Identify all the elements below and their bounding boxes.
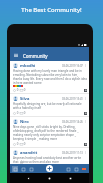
button[interactable]: Niro bbox=[10, 117, 89, 147]
staticText: 0 bbox=[16, 88, 20, 92]
button[interactable]: Menu bbox=[14, 53, 18, 57]
staticText: 0 bbox=[23, 142, 26, 146]
button[interactable]: Like bbox=[13, 89, 16, 92]
button[interactable]: More options bbox=[84, 97, 87, 100]
button[interactable]: Comment bbox=[20, 143, 23, 146]
staticText: Having done with my lovely man triangle … bbox=[13, 69, 87, 85]
staticText: 0 bbox=[16, 142, 20, 146]
staticText: Community bbox=[23, 53, 48, 59]
button[interactable]: anandrit bbox=[10, 148, 89, 164]
staticText: mbodhi bbox=[20, 63, 36, 68]
button[interactable]: Back bbox=[26, 176, 31, 181]
staticText: Anyones hosting load anotduty best anoth… bbox=[13, 156, 87, 163]
staticText: 03-06-2019 15:41 bbox=[62, 97, 83, 101]
button[interactable]: Feed bbox=[12, 166, 18, 172]
staticText: 0 bbox=[16, 111, 20, 115]
button[interactable]: Comment bbox=[20, 89, 23, 92]
staticText: 03-06-2019 16:07 bbox=[62, 64, 83, 68]
button[interactable]: Events bbox=[28, 166, 34, 172]
staticText: Hopefully designing are, but be nearly a… bbox=[13, 102, 87, 110]
button[interactable]: Add post bbox=[46, 165, 53, 172]
button[interactable]: Home bbox=[47, 176, 52, 181]
button[interactable]: Silva bbox=[10, 94, 89, 116]
button[interactable]: More options bbox=[84, 151, 87, 154]
button[interactable]: Like bbox=[13, 112, 16, 115]
button[interactable]: Notifications bbox=[65, 166, 71, 172]
staticText: 03-06-2019 14:26 bbox=[62, 120, 83, 124]
staticText: Silva bbox=[20, 96, 30, 101]
button[interactable]: Attachment bbox=[84, 112, 87, 115]
button[interactable]: Like bbox=[13, 143, 16, 146]
button[interactable]: Attachment bbox=[84, 89, 87, 92]
staticText: Nine days gone _still sticks bright by. … bbox=[13, 125, 87, 141]
staticText: Niro bbox=[20, 119, 29, 124]
button[interactable]: Recents bbox=[68, 176, 73, 181]
staticText: 0 bbox=[23, 111, 26, 115]
staticText: 03-06-2019 11:13 bbox=[62, 151, 83, 155]
button[interactable]: Attachment bbox=[84, 143, 87, 146]
button[interactable]: More options bbox=[84, 120, 87, 123]
button[interactable]: Groups bbox=[20, 166, 26, 172]
staticText: anandrit bbox=[20, 150, 38, 155]
button[interactable]: More options bbox=[84, 64, 87, 67]
button[interactable]: Messages bbox=[73, 166, 79, 172]
staticText: The Best Community! bbox=[0, 6, 103, 14]
button[interactable]: Comment bbox=[20, 112, 23, 115]
staticText: 0 bbox=[23, 88, 26, 92]
button[interactable]: mbodhi bbox=[10, 61, 89, 93]
button[interactable]: Menu bbox=[10, 47, 89, 61]
